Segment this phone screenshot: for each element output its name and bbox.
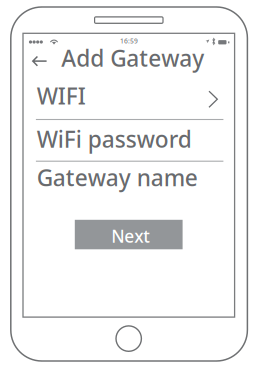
button[interactable]: Gateway name	[37, 160, 224, 194]
button[interactable]: Next	[75, 220, 183, 249]
staticText: Add Gateway	[61, 43, 204, 73]
staticText: Next	[111, 224, 150, 247]
staticText: WiFi password	[37, 124, 192, 154]
staticText: 16:59	[120, 37, 138, 45]
button[interactable]: WIFI	[37, 79, 224, 113]
staticText: WIFI	[37, 81, 86, 111]
button[interactable]: WiFi password	[37, 122, 224, 156]
staticText: Gateway name	[37, 162, 198, 192]
button[interactable]: Back	[31, 53, 51, 69]
